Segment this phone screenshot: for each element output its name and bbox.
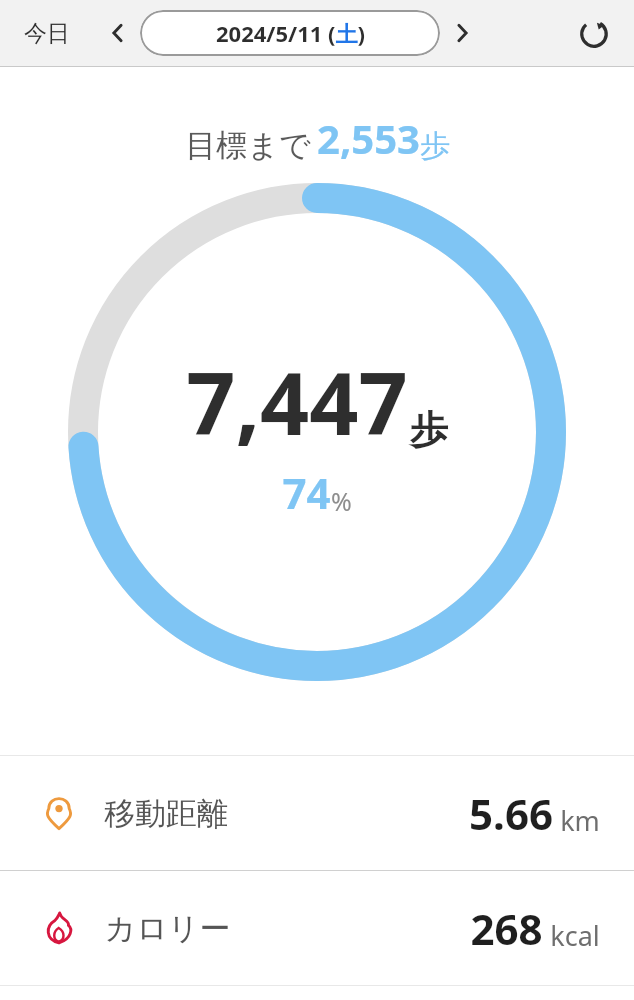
button[interactable]: Next day (440, 11, 484, 55)
staticText: % (331, 484, 352, 518)
staticText: km (560, 802, 600, 839)
other: Calories (38, 907, 80, 949)
button[interactable]: Calories (0, 871, 634, 985)
staticText: 2,553 (317, 111, 420, 165)
button[interactable]: Previous day (96, 11, 140, 55)
staticText: 7,447 (186, 343, 408, 460)
staticText: 5.66 (469, 785, 553, 842)
button[interactable]: Distance (0, 756, 634, 870)
staticText: 歩 (420, 127, 450, 165)
staticText: kcal (550, 917, 600, 954)
button[interactable]: Refresh (570, 9, 618, 57)
staticText: 268 (470, 900, 543, 957)
button[interactable]: 今日 (18, 11, 76, 56)
staticText: 目標まで (185, 126, 311, 165)
staticText: 歩 (410, 406, 448, 454)
staticText: 移動距離 (104, 794, 228, 833)
staticText: 今日 (24, 19, 70, 48)
other: Distance (38, 792, 80, 834)
button[interactable]: 2024/5/11 (土) (140, 10, 440, 56)
staticText: 74 (282, 464, 331, 521)
staticText: 2024/5/11 (土) (216, 18, 365, 48)
staticText: カロリー (104, 909, 231, 948)
